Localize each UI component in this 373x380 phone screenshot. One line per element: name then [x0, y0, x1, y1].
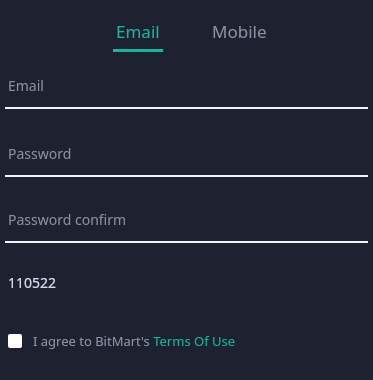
staticText: Mobile: [212, 20, 267, 43]
button[interactable]: Password confirm: [0, 206, 373, 243]
staticText: Password: [8, 144, 72, 163]
button[interactable]: Mobile: [204, 0, 275, 43]
staticText: Email: [116, 20, 160, 43]
button[interactable]: 110522: [0, 270, 373, 294]
button[interactable]: Email: [105, 0, 171, 52]
button[interactable]: Password: [0, 140, 373, 177]
staticText: Email: [8, 76, 44, 95]
button[interactable]: Email: [0, 72, 373, 109]
staticText: I agree to BitMart's Terms Of Use: [33, 332, 236, 350]
staticText: 110522: [8, 273, 57, 292]
other: Agree to terms checkbox: [8, 334, 22, 348]
staticText: Password confirm: [8, 210, 127, 229]
button[interactable]: Agree to terms checkbox: [8, 328, 236, 354]
